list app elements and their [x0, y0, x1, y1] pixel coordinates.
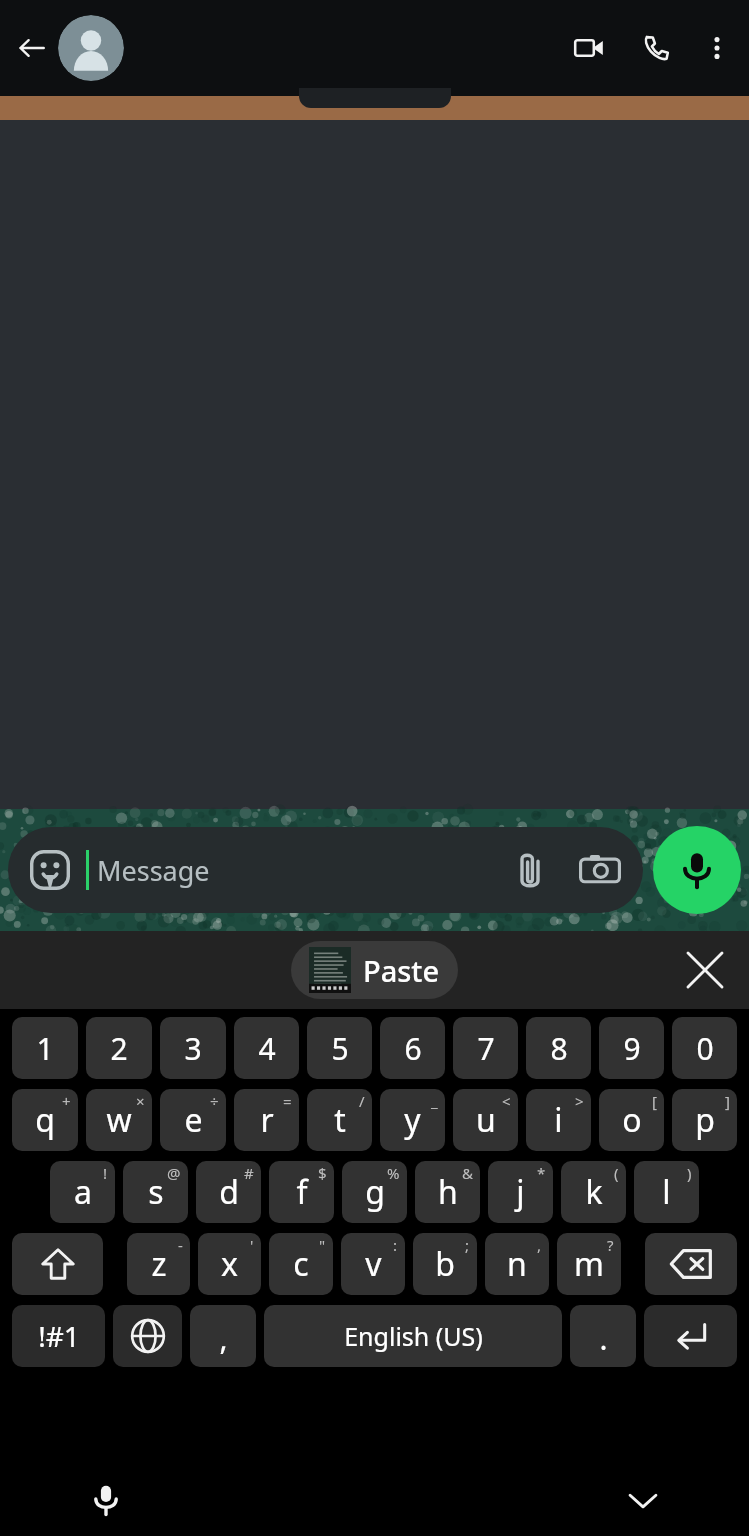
staticText: x	[221, 1242, 238, 1286]
staticText: ,	[219, 1318, 228, 1359]
button[interactable]: 0	[672, 1017, 737, 1079]
button[interactable]: i	[526, 1089, 591, 1151]
staticText: q	[35, 1098, 55, 1142]
button[interactable]: c	[269, 1233, 333, 1295]
button[interactable]: n	[485, 1233, 549, 1295]
button[interactable]: 7	[453, 1017, 518, 1079]
staticText: Paste	[363, 951, 440, 990]
button[interactable]: Voice call	[631, 22, 683, 74]
staticText: p	[695, 1098, 715, 1142]
button[interactable]: Paste	[291, 941, 458, 999]
button[interactable]: Hide keyboard	[615, 1472, 671, 1528]
button[interactable]: .	[570, 1305, 636, 1367]
staticText: ÷	[210, 1091, 219, 1111]
button[interactable]: 4	[234, 1017, 299, 1079]
button[interactable]: Voice input	[78, 1472, 134, 1528]
button[interactable]: !#1	[12, 1305, 105, 1367]
button[interactable]: t	[307, 1089, 372, 1151]
staticText: 6	[404, 1028, 422, 1069]
button[interactable]: English (US)	[264, 1305, 562, 1367]
staticText: >	[575, 1091, 584, 1111]
staticText: ×	[136, 1091, 145, 1111]
button[interactable]: h	[415, 1161, 480, 1223]
staticText: <	[502, 1091, 511, 1111]
staticText: !	[103, 1163, 108, 1183]
button[interactable]: Change language	[113, 1305, 182, 1367]
button[interactable]: 5	[307, 1017, 372, 1079]
button[interactable]: d	[196, 1161, 261, 1223]
staticText: l	[662, 1170, 671, 1214]
staticText: d	[219, 1170, 239, 1214]
staticText: %	[387, 1163, 400, 1183]
button[interactable]: 8	[526, 1017, 591, 1079]
staticText: English (US)	[344, 1319, 483, 1353]
button[interactable]: s	[123, 1161, 188, 1223]
button[interactable]: 3	[160, 1017, 226, 1079]
button[interactable]: j	[488, 1161, 553, 1223]
button[interactable]: More options	[691, 22, 743, 74]
button[interactable]: Emoji	[8, 827, 643, 913]
button[interactable]: Camera	[577, 847, 623, 893]
button[interactable]: f	[269, 1161, 334, 1223]
staticText: 4	[258, 1028, 276, 1069]
staticText: #	[244, 1163, 254, 1183]
button[interactable]: Back	[4, 20, 60, 76]
button[interactable]: r	[234, 1089, 299, 1151]
staticText: i	[554, 1098, 563, 1142]
button[interactable]: l	[634, 1161, 699, 1223]
button[interactable]: y	[380, 1089, 445, 1151]
button[interactable]: z	[127, 1233, 190, 1295]
button[interactable]: p	[672, 1089, 737, 1151]
staticText: _	[431, 1091, 438, 1111]
button[interactable]: Contact profile	[58, 15, 124, 81]
button[interactable]: m	[557, 1233, 621, 1295]
staticText: b	[435, 1242, 455, 1286]
staticText: -	[178, 1235, 183, 1255]
button[interactable]: v	[341, 1233, 405, 1295]
button[interactable]: 2	[86, 1017, 152, 1079]
staticText: n	[507, 1242, 527, 1286]
staticText: @	[167, 1163, 181, 1183]
button[interactable]: x	[198, 1233, 261, 1295]
staticText: z	[151, 1242, 167, 1286]
button[interactable]: Shift	[12, 1233, 103, 1295]
button[interactable]: 9	[599, 1017, 664, 1079]
button[interactable]: u	[453, 1089, 518, 1151]
button[interactable]: b	[413, 1233, 477, 1295]
staticText: =	[283, 1091, 292, 1111]
staticText: j	[516, 1170, 525, 1214]
button[interactable]: w	[86, 1089, 152, 1151]
button[interactable]: ,	[190, 1305, 256, 1367]
staticText: s	[148, 1170, 164, 1214]
staticText: c	[293, 1242, 309, 1286]
staticText: 0	[696, 1028, 714, 1069]
staticText: [	[652, 1091, 657, 1111]
staticText: .	[599, 1318, 608, 1359]
button[interactable]: a	[50, 1161, 115, 1223]
button[interactable]: Video call	[563, 22, 615, 74]
staticText: ,	[537, 1235, 542, 1255]
button[interactable]: 6	[380, 1017, 445, 1079]
staticText: 2	[110, 1028, 128, 1069]
staticText: g	[365, 1170, 385, 1214]
button[interactable]: Close suggestions	[677, 942, 733, 998]
button[interactable]: Enter	[644, 1305, 737, 1367]
staticText: m	[574, 1242, 604, 1286]
button[interactable]: o	[599, 1089, 664, 1151]
staticText: v	[365, 1242, 382, 1286]
button[interactable]: Record voice message	[653, 826, 741, 914]
button[interactable]: 1	[12, 1017, 78, 1079]
staticText: :	[393, 1235, 398, 1255]
button[interactable]: Emoji	[28, 848, 72, 892]
button[interactable]: e	[160, 1089, 226, 1151]
staticText: ?	[607, 1235, 614, 1255]
button[interactable]: Backspace	[645, 1233, 737, 1295]
button[interactable]: Attach	[507, 847, 553, 893]
button[interactable]: k	[561, 1161, 626, 1223]
staticText: /	[359, 1091, 365, 1111]
button[interactable]: g	[342, 1161, 407, 1223]
staticText: h	[438, 1170, 458, 1214]
button[interactable]: q	[12, 1089, 78, 1151]
staticText: e	[184, 1098, 203, 1142]
staticText: *	[537, 1163, 546, 1183]
